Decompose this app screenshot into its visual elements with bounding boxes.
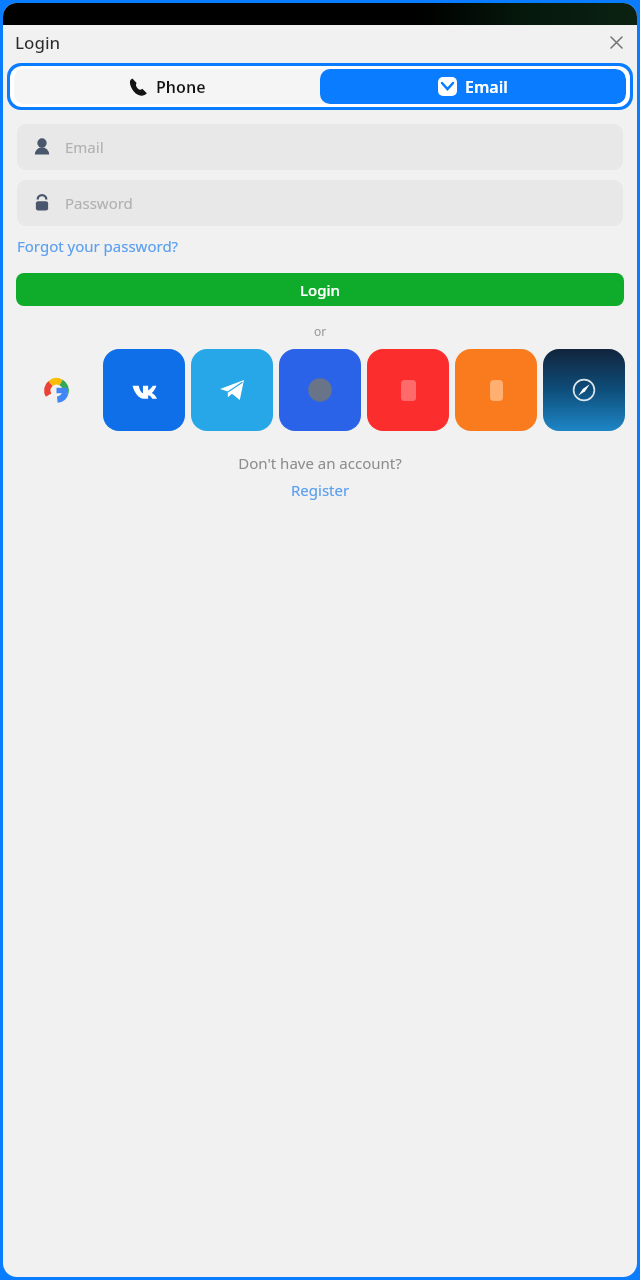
button[interactable]: Sign in with Mail — [279, 349, 361, 431]
staticText: Password — [65, 193, 133, 213]
staticText: or — [314, 323, 327, 339]
button[interactable]: Password — [17, 180, 623, 226]
button[interactable]: Sign in with Google — [15, 349, 97, 431]
staticText: Phone — [156, 76, 206, 98]
staticText: Email — [465, 76, 508, 98]
staticText: Register — [291, 480, 350, 500]
button[interactable]: Register — [285, 479, 356, 501]
button[interactable]: Sign in with Apple — [543, 349, 625, 431]
staticText: Login — [15, 31, 61, 54]
staticText: Email — [65, 137, 104, 157]
button[interactable]: Email — [17, 124, 623, 170]
staticText: Login — [300, 280, 340, 300]
button[interactable]: Sign in with Telegram — [191, 349, 273, 431]
button[interactable]: Phone — [14, 69, 320, 104]
staticText: Don't have an account? — [238, 453, 402, 473]
button[interactable]: Login — [16, 273, 624, 306]
button[interactable]: Sign in with Odnoklassniki — [455, 349, 537, 431]
button[interactable]: Sign in with VK — [103, 349, 185, 431]
button[interactable]: Sign in with Yandex — [367, 349, 449, 431]
button[interactable]: Email — [320, 69, 626, 104]
staticText: Forgot your password? — [17, 236, 179, 256]
button[interactable]: Close — [605, 31, 627, 53]
button[interactable]: Forgot your password? — [17, 234, 179, 258]
